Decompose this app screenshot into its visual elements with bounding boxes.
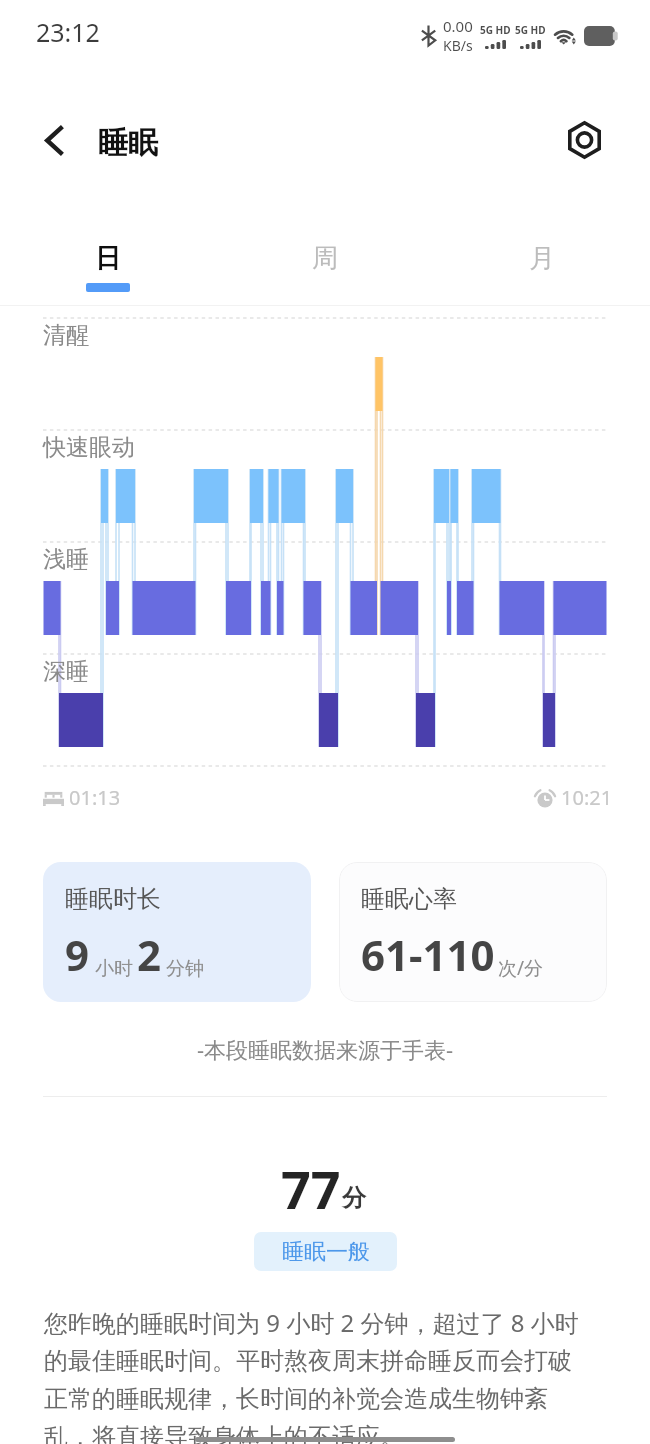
staticText: 2 bbox=[137, 926, 162, 983]
staticText: 5G HD bbox=[480, 23, 511, 37]
staticText: KB/s bbox=[443, 36, 473, 55]
staticText: 5G HD bbox=[515, 23, 546, 37]
staticText: 77 bbox=[281, 1153, 341, 1224]
button[interactable]: 睡眠心率 bbox=[339, 862, 607, 1002]
button[interactable]: Settings bbox=[560, 115, 609, 164]
staticText: 61-110 bbox=[361, 926, 495, 983]
button[interactable]: 睡眠时长 bbox=[43, 862, 311, 1002]
staticText: 0.00 bbox=[443, 16, 473, 36]
staticText: 清醒 bbox=[43, 321, 89, 350]
staticText: 睡眠心率 bbox=[361, 884, 457, 914]
staticText: 分钟 bbox=[166, 957, 204, 981]
button[interactable]: Back bbox=[26, 112, 82, 168]
staticText: 9 bbox=[65, 926, 90, 983]
staticText: 睡眠时长 bbox=[65, 884, 161, 914]
staticText: 次/分 bbox=[498, 955, 544, 981]
button[interactable]: 周 bbox=[216, 226, 433, 300]
button[interactable]: 月 bbox=[433, 226, 650, 300]
staticText: 01:13 bbox=[69, 784, 121, 811]
staticText: 睡眠 bbox=[98, 124, 158, 162]
staticText: 23:12 bbox=[36, 15, 100, 49]
staticText: 10:21 bbox=[561, 784, 613, 811]
staticText: 浅睡 bbox=[43, 545, 89, 574]
staticText: 小时 bbox=[95, 957, 133, 981]
staticText: 快速眼动 bbox=[43, 433, 135, 462]
staticText: 周 bbox=[312, 242, 338, 275]
staticText: -本段睡眠数据来源于手表- bbox=[0, 1034, 650, 1064]
staticText: 深睡 bbox=[43, 657, 89, 686]
staticText: 睡眠一般 bbox=[282, 1238, 370, 1266]
staticText: 分 bbox=[342, 1183, 366, 1213]
staticText: 日 bbox=[95, 242, 121, 275]
button[interactable]: 日 bbox=[0, 226, 216, 300]
button[interactable]: 睡眠一般 bbox=[254, 1232, 397, 1271]
staticText: 您昨晚的睡眠时间为 9 小时 2 分钟，超过了 8 小时的最佳睡眠时间。平时熬夜… bbox=[44, 1306, 592, 1444]
staticText: 月 bbox=[529, 242, 555, 275]
